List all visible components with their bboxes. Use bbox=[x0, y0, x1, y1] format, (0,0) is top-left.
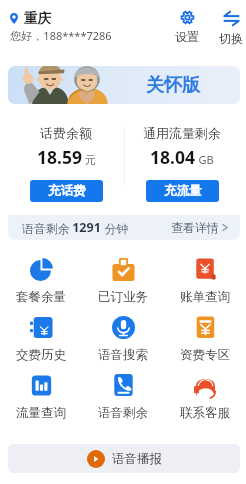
button[interactable]: 联系客服 bbox=[164, 364, 246, 422]
button[interactable]: 充话费 bbox=[30, 180, 103, 202]
staticText: 资费专区 bbox=[180, 347, 230, 363]
staticText: 关怀版 bbox=[146, 74, 200, 97]
button[interactable]: 关怀版 bbox=[8, 66, 240, 104]
staticText: 流量查询 bbox=[16, 405, 66, 421]
button[interactable]: 套餐余量 bbox=[0, 248, 82, 306]
staticText: 充话费 bbox=[48, 183, 86, 199]
staticText: 联系客服 bbox=[180, 405, 230, 421]
button[interactable]: 切换 bbox=[216, 0, 246, 48]
staticText: 语音搜索 bbox=[98, 347, 148, 363]
staticText: 切换 bbox=[219, 31, 243, 46]
staticText: 18.59 bbox=[37, 145, 82, 169]
button[interactable]: 语音搜索 bbox=[82, 306, 164, 364]
staticText: 充流量 bbox=[164, 183, 202, 199]
other: 切换 bbox=[223, 10, 240, 27]
staticText: 账单查询 bbox=[180, 289, 230, 305]
staticText: GB bbox=[198, 152, 214, 167]
button[interactable]: 充流量 bbox=[146, 180, 219, 202]
staticText: 查看详情 bbox=[171, 220, 219, 235]
staticText: 18.04 bbox=[150, 145, 195, 169]
staticText: 语音播报 bbox=[112, 451, 162, 467]
button[interactable]: 已订业务 bbox=[82, 248, 164, 306]
button[interactable]: 通用流量剩余 bbox=[124, 112, 240, 215]
button[interactable]: 语音剩余 bbox=[82, 364, 164, 422]
button[interactable]: 账单查询 bbox=[164, 248, 246, 306]
staticText: 语音剩余 bbox=[20, 220, 72, 236]
staticText: 交费历史 bbox=[16, 347, 66, 363]
staticText: 您好，188****7286 bbox=[10, 28, 112, 43]
staticText: 设置 bbox=[175, 29, 199, 44]
button[interactable]: 语音播报 bbox=[8, 444, 240, 473]
staticText: 套餐余量 bbox=[16, 289, 66, 305]
staticText: 语音剩余 bbox=[98, 405, 148, 421]
staticText: 通用流量剩余 bbox=[143, 125, 221, 141]
staticText: 1291 bbox=[72, 219, 101, 236]
button[interactable]: 资费专区 bbox=[164, 306, 246, 364]
other: 设置 bbox=[180, 10, 195, 25]
button[interactable]: 话费余额 bbox=[8, 112, 124, 215]
button[interactable]: 交费历史 bbox=[0, 306, 82, 364]
button[interactable]: 流量查询 bbox=[0, 364, 82, 422]
staticText: 分钟 bbox=[101, 220, 129, 236]
staticText: 元 bbox=[85, 153, 96, 167]
staticText: 已订业务 bbox=[98, 289, 148, 305]
staticText: 重庆 bbox=[24, 10, 51, 27]
button[interactable]: 语音剩余 bbox=[8, 215, 240, 240]
button[interactable]: 设置 bbox=[172, 0, 202, 46]
staticText: 话费余额 bbox=[40, 125, 92, 141]
